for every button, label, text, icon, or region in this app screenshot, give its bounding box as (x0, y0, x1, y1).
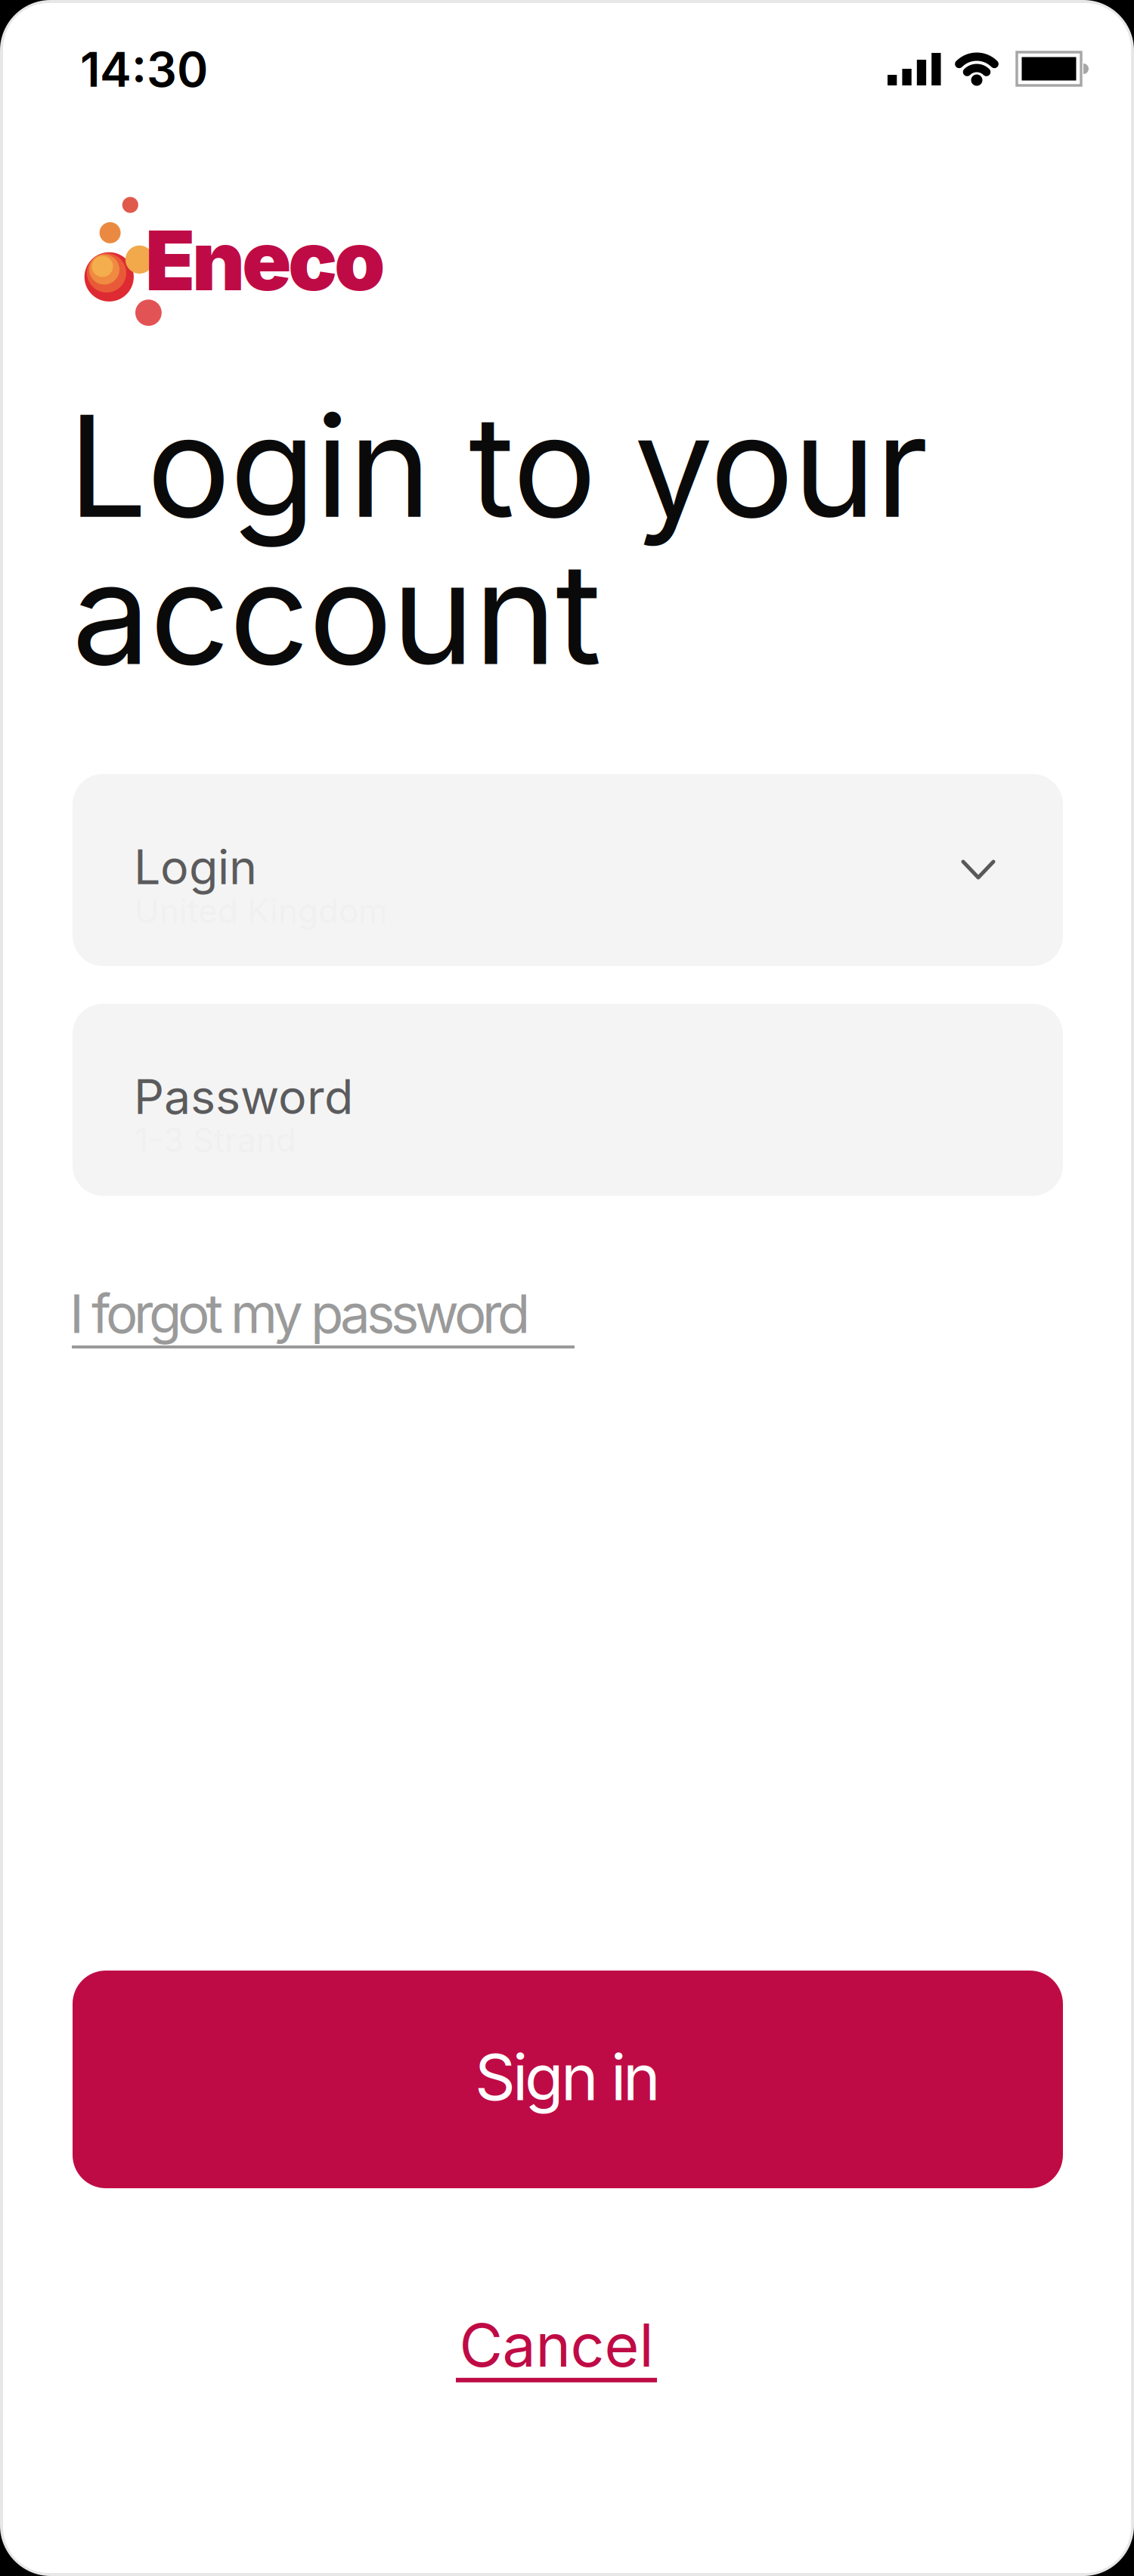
staticText: account (72, 530, 602, 696)
staticText: Login to your (68, 383, 928, 548)
staticText: I forgot my password (70, 1282, 530, 1345)
button[interactable]: Sign in (73, 1971, 1063, 2188)
staticText: Eneco (145, 212, 386, 309)
staticText: 14:30 (80, 42, 208, 97)
button[interactable]: Cancel (456, 2310, 657, 2382)
staticText: Password (134, 1069, 353, 1125)
button[interactable]: Login (73, 774, 1063, 966)
staticText: Sign in (475, 2040, 661, 2115)
button[interactable]: I forgot my password (70, 1282, 572, 1345)
staticText: Login (134, 839, 257, 895)
staticText: Cancel (459, 2310, 654, 2380)
staticText: United Kingdom (135, 891, 388, 930)
button[interactable]: Password (73, 1004, 1063, 1196)
